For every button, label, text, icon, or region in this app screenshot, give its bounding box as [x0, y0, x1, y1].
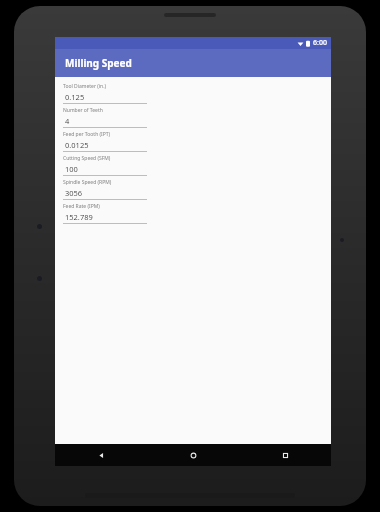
staticText: 152.789 — [65, 212, 93, 222]
staticText: Feed Rate (IPM) — [63, 203, 100, 210]
staticText: 3056 — [65, 188, 83, 198]
button[interactable]: Number of Teeth — [63, 107, 147, 131]
staticText: Spindle Speed (RPM) — [63, 179, 112, 186]
staticText: 100 — [65, 164, 78, 174]
button[interactable]: Feed per Tooth (IPT) — [63, 131, 147, 155]
staticText: 0.0125 — [65, 140, 89, 150]
button[interactable]: Milling Speed — [55, 49, 331, 77]
button[interactable]: Tool Diameter (in.) — [63, 83, 147, 107]
staticText: 4 — [65, 116, 70, 126]
button[interactable]: Home — [147, 444, 239, 466]
staticText: Feed per Tooth (IPT) — [63, 131, 111, 138]
button[interactable]: Back — [55, 444, 147, 466]
button[interactable]: Spindle Speed (RPM) — [63, 179, 147, 203]
button[interactable]: Feed Rate (IPM) — [63, 203, 147, 227]
button[interactable]: Cutting Speed (SFM) — [63, 155, 147, 179]
staticText: Number of Teeth — [63, 107, 103, 114]
staticText: 6:00 — [313, 38, 327, 48]
staticText: Cutting Speed (SFM) — [63, 155, 111, 162]
button[interactable]: Recent apps — [239, 444, 331, 466]
staticText: 0.125 — [65, 92, 85, 102]
staticText: Tool Diameter (in.) — [63, 83, 107, 90]
staticText: Milling Speed — [65, 56, 132, 70]
